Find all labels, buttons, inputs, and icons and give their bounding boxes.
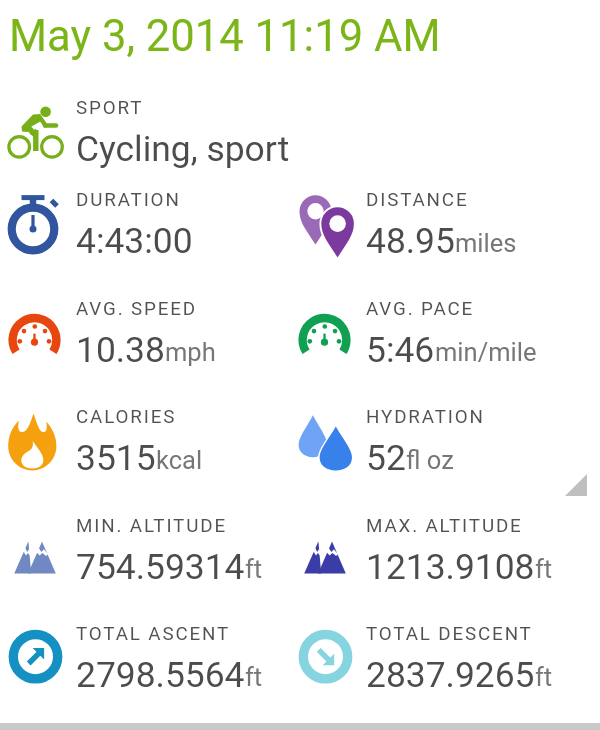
staticText: MAX. ALTITUDE [366,515,523,537]
staticText: DURATION [76,189,181,211]
button[interactable]: HYDRATION [366,406,485,469]
button[interactable]: Calories [0,401,72,473]
staticText: ft [245,662,263,692]
button[interactable]: Total descent [290,618,362,690]
staticText: MIN. ALTITUDE [76,515,227,537]
staticText: CALORIES [76,406,177,428]
button[interactable]: MIN. ALTITUDE [76,515,263,578]
staticText: May 3, 2014 11:19 AM [9,11,441,62]
staticText: AVG. SPEED [76,298,197,320]
staticText: mph [165,337,216,367]
button[interactable]: Maximum altitude [290,510,362,582]
staticText: DISTANCE [366,189,469,211]
button[interactable]: DURATION [76,189,193,252]
staticText: 1213.9108 [366,546,535,587]
staticText: ft [535,554,553,584]
button[interactable]: Average speed [0,293,72,365]
staticText: fl oz [406,445,454,475]
staticText: 4:43:00 [76,220,193,261]
staticText: AVG. PACE [366,298,475,320]
button[interactable]: AVG. PACE [366,298,537,361]
button[interactable]: SPORT [76,97,290,160]
staticText: 754.59314 [76,546,245,587]
button[interactable]: MAX. ALTITUDE [366,515,553,578]
button[interactable]: Minimum altitude [0,510,72,582]
staticText: TOTAL DESCENT [366,623,533,645]
button[interactable]: DISTANCE [366,189,517,252]
button[interactable]: Average pace [290,293,362,365]
button[interactable]: AVG. SPEED [76,298,216,361]
staticText: TOTAL ASCENT [76,623,231,645]
staticText: 48.95 [366,220,455,261]
staticText: miles [455,228,517,258]
staticText: ft [535,662,553,692]
staticText: SPORT [76,97,144,119]
staticText: min/mile [435,337,537,367]
button[interactable]: Hydration [290,401,362,473]
staticText: 2837.9265 [366,654,535,695]
button[interactable]: TOTAL ASCENT [76,623,263,686]
button[interactable]: CALORIES [76,406,203,469]
staticText: HYDRATION [366,406,485,428]
staticText: 5:46 [366,329,435,370]
button[interactable]: Distance [290,184,362,256]
staticText: 10.38 [76,329,165,370]
button[interactable]: Total ascent [0,618,72,690]
staticText: 3515 [76,437,156,478]
button[interactable]: TOTAL DESCENT [366,623,553,686]
staticText: Cycling, sport [76,128,290,169]
staticText: kcal [156,445,203,475]
staticText: 2798.5564 [76,654,245,695]
button[interactable]: Duration [0,184,72,256]
staticText: ft [245,554,263,584]
button[interactable]: Sport [0,92,72,164]
staticText: 52 [366,437,406,478]
